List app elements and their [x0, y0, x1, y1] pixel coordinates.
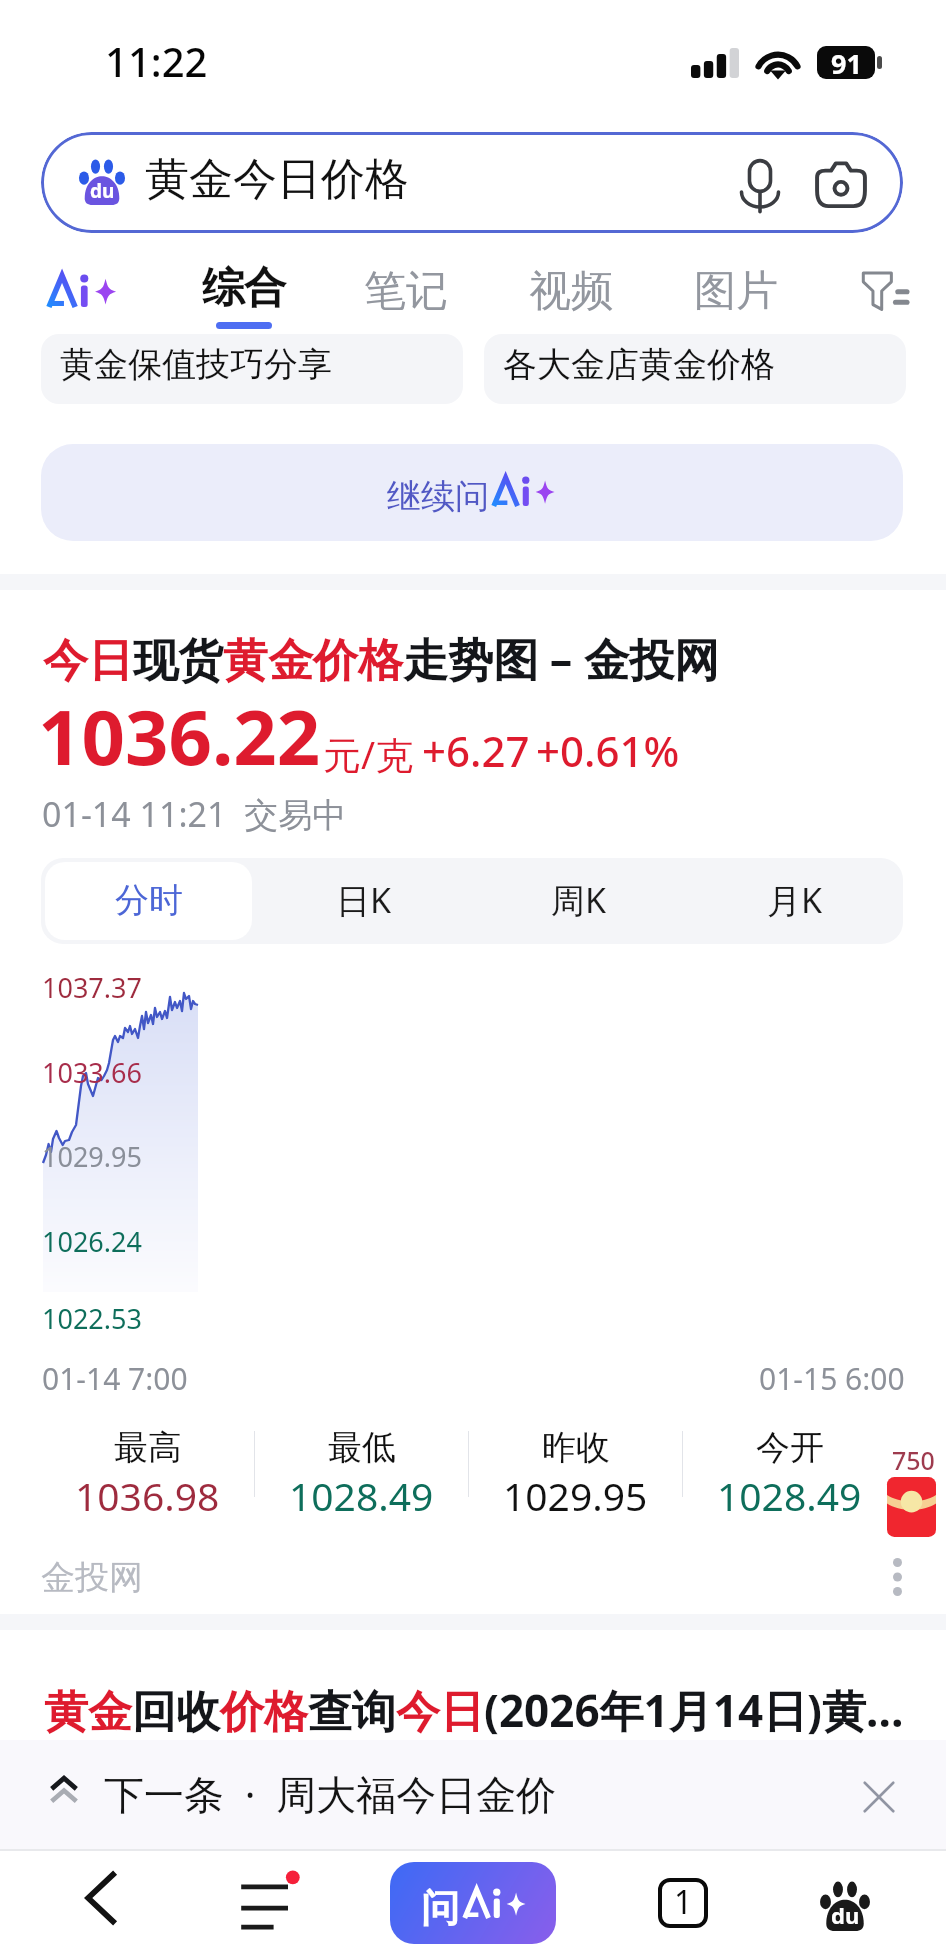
- staticText: 11:22: [105, 34, 208, 88]
- button[interactable]: 黄金保值技巧分享: [41, 334, 463, 404]
- button[interactable]: 图片: [694, 265, 778, 318]
- button[interactable]: Menu: [228, 1857, 312, 1939]
- staticText: 黄金保值技巧分享: [60, 343, 332, 386]
- button[interactable]: 周K: [475, 862, 683, 940]
- button[interactable]: 视频: [529, 265, 613, 318]
- staticText: 1029.95: [503, 1469, 648, 1520]
- button[interactable]: 问: [390, 1862, 556, 1944]
- staticText: 1: [674, 1880, 693, 1924]
- button[interactable]: 昨收: [468, 1415, 682, 1520]
- staticText: 最高: [114, 1426, 182, 1469]
- button[interactable]: 最低: [254, 1415, 468, 1520]
- staticText: 91: [831, 46, 862, 78]
- staticText: 黄金今日价格: [145, 152, 409, 207]
- button[interactable]: 继续问: [41, 444, 903, 541]
- staticText: +6.27: [422, 722, 530, 779]
- button[interactable]: 笔记: [364, 265, 448, 318]
- button[interactable]: Red packet offer: [887, 1477, 936, 1537]
- staticText: 继续问: [387, 475, 489, 518]
- staticText: 今开: [756, 1426, 824, 1469]
- staticText: 1036.98: [75, 1469, 220, 1520]
- button[interactable]: 今日现货黄金价格走势图 – 金投网: [43, 628, 719, 689]
- staticText: 01-15 6:00: [759, 1358, 905, 1399]
- staticText: 下一条 · 周大福今日金价: [104, 1766, 557, 1821]
- staticText: 月K: [767, 877, 823, 923]
- button[interactable]: 最高: [40, 1415, 254, 1520]
- staticText: 1022.53: [42, 1300, 142, 1337]
- staticText: 最低: [328, 1426, 396, 1469]
- button[interactable]: 日K: [260, 862, 467, 940]
- button[interactable]: Baidu home: [805, 1865, 885, 1945]
- staticText: 问: [421, 1884, 459, 1932]
- button[interactable]: Camera search: [815, 161, 867, 209]
- staticText: 1033.66: [42, 1054, 142, 1091]
- staticText: du: [831, 1900, 860, 1930]
- button[interactable]: Back: [66, 1857, 136, 1939]
- staticText: 1028.49: [289, 1469, 434, 1520]
- button[interactable]: Voice search: [735, 156, 785, 214]
- button[interactable]: More options: [893, 1558, 902, 1596]
- staticText: 周K: [551, 877, 607, 923]
- button[interactable]: Filter: [861, 271, 907, 311]
- staticText: 1036.22: [38, 684, 321, 788]
- staticText: 750: [892, 1443, 935, 1477]
- button[interactable]: 黄金回收价格查询今日(2026年1月14日)黄…: [44, 1680, 924, 1740]
- staticText: +0.61%: [536, 722, 680, 779]
- staticText: 分时: [115, 879, 183, 922]
- staticText: 1029.95: [42, 1138, 142, 1175]
- staticText: 01-14 11:21 交易中: [42, 791, 347, 837]
- staticText: 01-14 7:00: [42, 1358, 188, 1399]
- button[interactable]: 今开: [682, 1415, 896, 1520]
- button[interactable]: 分时: [45, 862, 252, 940]
- button[interactable]: 金投网: [41, 1556, 143, 1599]
- staticText: 昨收: [542, 1426, 610, 1469]
- staticText: du: [90, 178, 115, 204]
- button[interactable]: [0, 1740, 946, 1849]
- button[interactable]: 月K: [691, 862, 899, 940]
- button[interactable]: du: [41, 132, 903, 233]
- staticText: 综合: [202, 262, 286, 315]
- staticText: 各大金店黄金价格: [503, 343, 775, 386]
- staticText: 1026.24: [42, 1223, 142, 1260]
- button[interactable]: Tabs: [645, 1865, 721, 1941]
- staticText: 元/克: [323, 728, 414, 780]
- button[interactable]: 综合: [202, 262, 286, 329]
- staticText: 1037.37: [42, 969, 142, 1006]
- button[interactable]: 各大金店黄金价格: [484, 334, 906, 404]
- button[interactable]: Close: [858, 1776, 900, 1818]
- staticText: 日K: [336, 877, 392, 923]
- staticText: 1028.49: [717, 1469, 862, 1520]
